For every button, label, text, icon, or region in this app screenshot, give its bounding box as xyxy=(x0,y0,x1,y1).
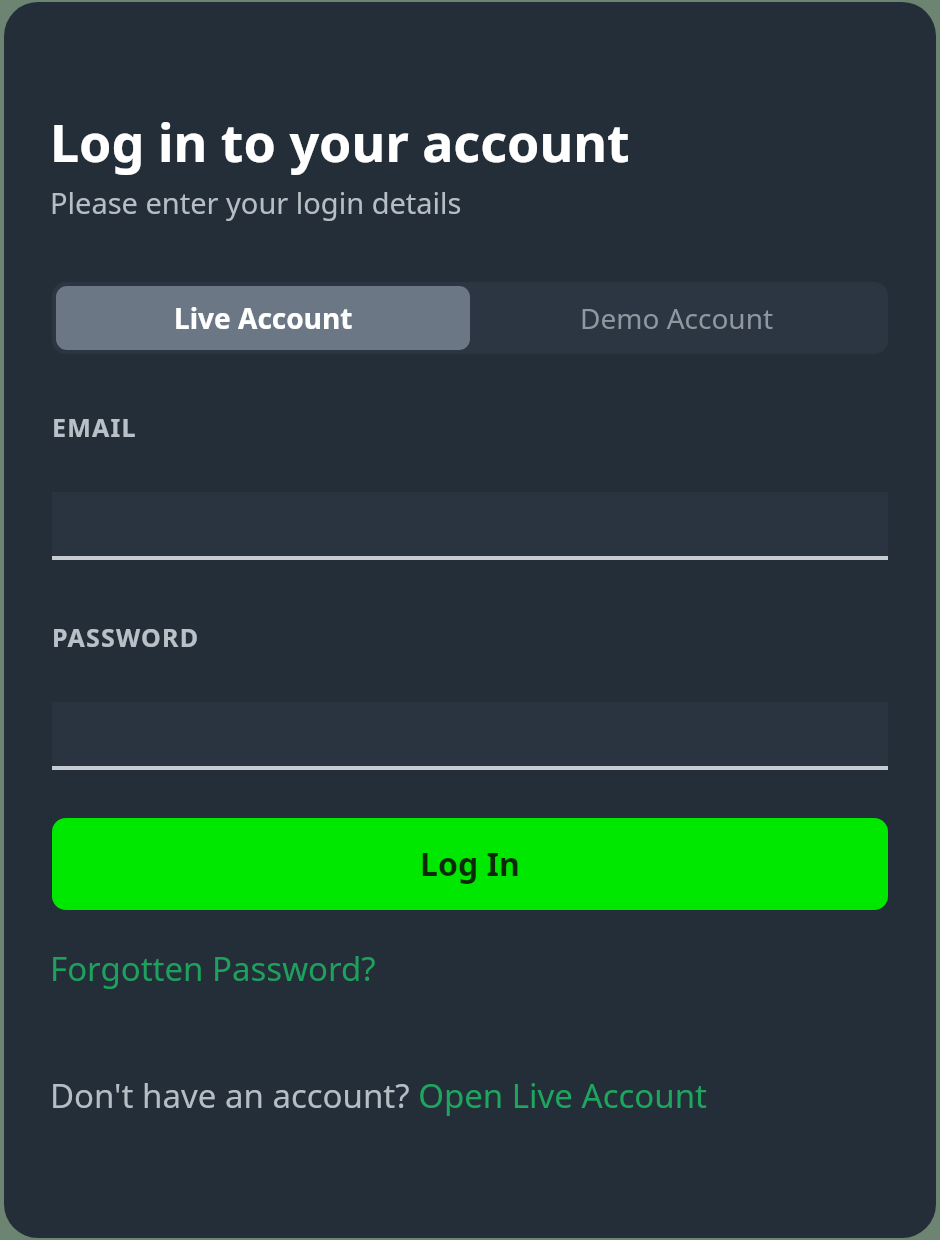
staticText: Live Account xyxy=(174,299,353,337)
staticText: Demo Account xyxy=(580,299,774,337)
button[interactable]: Email xyxy=(52,492,888,560)
staticText: Forgotten Password? xyxy=(50,946,376,991)
staticText: Log in to your account xyxy=(50,106,630,177)
staticText: Don't have an account? Open Live Account xyxy=(50,1073,707,1118)
button[interactable]: Password xyxy=(52,702,888,770)
button[interactable]: Log In xyxy=(52,818,888,910)
button[interactable]: Don't have an account? Open Live Account xyxy=(50,1071,707,1120)
button[interactable]: Demo Account xyxy=(470,286,884,350)
staticText: EMAIL xyxy=(52,410,137,444)
staticText: Please enter your login details xyxy=(50,183,462,222)
staticText: PASSWORD xyxy=(52,620,200,654)
staticText: Log In xyxy=(420,842,520,886)
button[interactable]: Forgotten Password? xyxy=(50,942,376,995)
button[interactable]: Live Account xyxy=(56,286,470,350)
